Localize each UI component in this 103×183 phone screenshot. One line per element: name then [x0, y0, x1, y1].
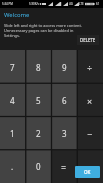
button[interactable]: 8	[25, 50, 51, 84]
staticText: Welcome	[4, 11, 30, 19]
staticText: ÷	[87, 61, 93, 73]
staticText: ×	[87, 95, 93, 107]
staticText: Slide left and right to access more cont…	[4, 23, 82, 38]
staticText: 8	[36, 62, 41, 73]
button[interactable]: ÷	[77, 50, 103, 84]
button[interactable]: 1	[0, 117, 25, 150]
staticText: 7	[10, 62, 15, 73]
staticText: 4G	[69, 2, 73, 6]
staticText: 1	[10, 128, 15, 139]
staticText: −	[87, 128, 93, 140]
staticText: 2	[36, 128, 41, 139]
button[interactable]: 4	[0, 84, 25, 117]
button[interactable]: 2	[25, 117, 51, 150]
button[interactable]: −	[77, 117, 103, 150]
button[interactable]: 0	[25, 150, 51, 183]
button[interactable]: 3	[51, 117, 77, 150]
button[interactable]: 7	[0, 50, 25, 84]
staticText: DELETE	[80, 37, 96, 43]
button[interactable]: ×	[77, 84, 103, 117]
staticText: 3	[62, 128, 67, 139]
button[interactable]: 6	[51, 84, 77, 117]
staticText: 4	[10, 95, 15, 106]
staticText: OK	[84, 169, 91, 175]
staticText: 6	[62, 95, 67, 106]
button[interactable]: 9	[51, 50, 77, 84]
staticText: 9	[62, 62, 67, 73]
staticText: 5:34 PM	[2, 2, 13, 6]
staticText: LTE	[79, 2, 84, 6]
button[interactable]: .	[0, 150, 25, 183]
staticText: 61	[96, 2, 100, 6]
staticText: =	[61, 161, 67, 173]
button[interactable]: 5	[25, 84, 51, 117]
button[interactable]: =	[51, 150, 77, 183]
staticText: 0	[36, 161, 41, 172]
staticText: .	[11, 161, 14, 172]
button[interactable]: OK	[75, 166, 100, 178]
staticText: 5	[36, 95, 41, 106]
staticText: 5.90K/s	[29, 2, 39, 6]
button[interactable]: DELETE	[77, 35, 99, 45]
